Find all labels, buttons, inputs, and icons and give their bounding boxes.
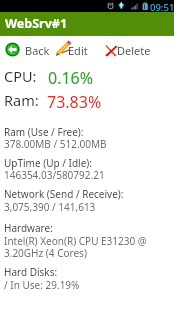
other: Delete [104, 45, 118, 57]
button[interactable]: Back [3, 38, 49, 56]
staticText: CPU: [4, 66, 37, 86]
staticText: 0.16% [48, 67, 94, 89]
staticText: 3.20GHz (4 Cores) [4, 246, 87, 260]
staticText: Ram (Use / Free): [4, 125, 84, 139]
staticText: Ram: [4, 90, 39, 110]
button[interactable]: Edit [54, 38, 90, 56]
staticText: Edit [68, 43, 88, 58]
staticText: Network (Send / Receive): [4, 187, 124, 201]
staticText: WebSrv#1 [5, 15, 68, 32]
staticText: UpTime (Up / Idle): [4, 156, 93, 170]
other: Edit [55, 40, 73, 56]
staticText: 73.83% [47, 91, 102, 113]
staticText: Back [25, 43, 50, 58]
other: Back [5, 42, 20, 57]
staticText: Hard Disks: [4, 265, 58, 279]
staticText: 3,075,390 / 141,613 [4, 200, 96, 214]
staticText: Hardware: [4, 221, 53, 235]
staticText: 146354.03/580792.21 [4, 168, 105, 182]
staticText: Delete [117, 43, 151, 58]
staticText: 09:51 [150, 1, 174, 14]
staticText: 378.00MB / 512.00MB [4, 137, 107, 151]
staticText: Intel(R) Xeon(R) CPU E31230 @ [4, 234, 147, 248]
button[interactable]: Delete [103, 38, 158, 56]
staticText: / In Use: 29.19% [4, 278, 80, 292]
